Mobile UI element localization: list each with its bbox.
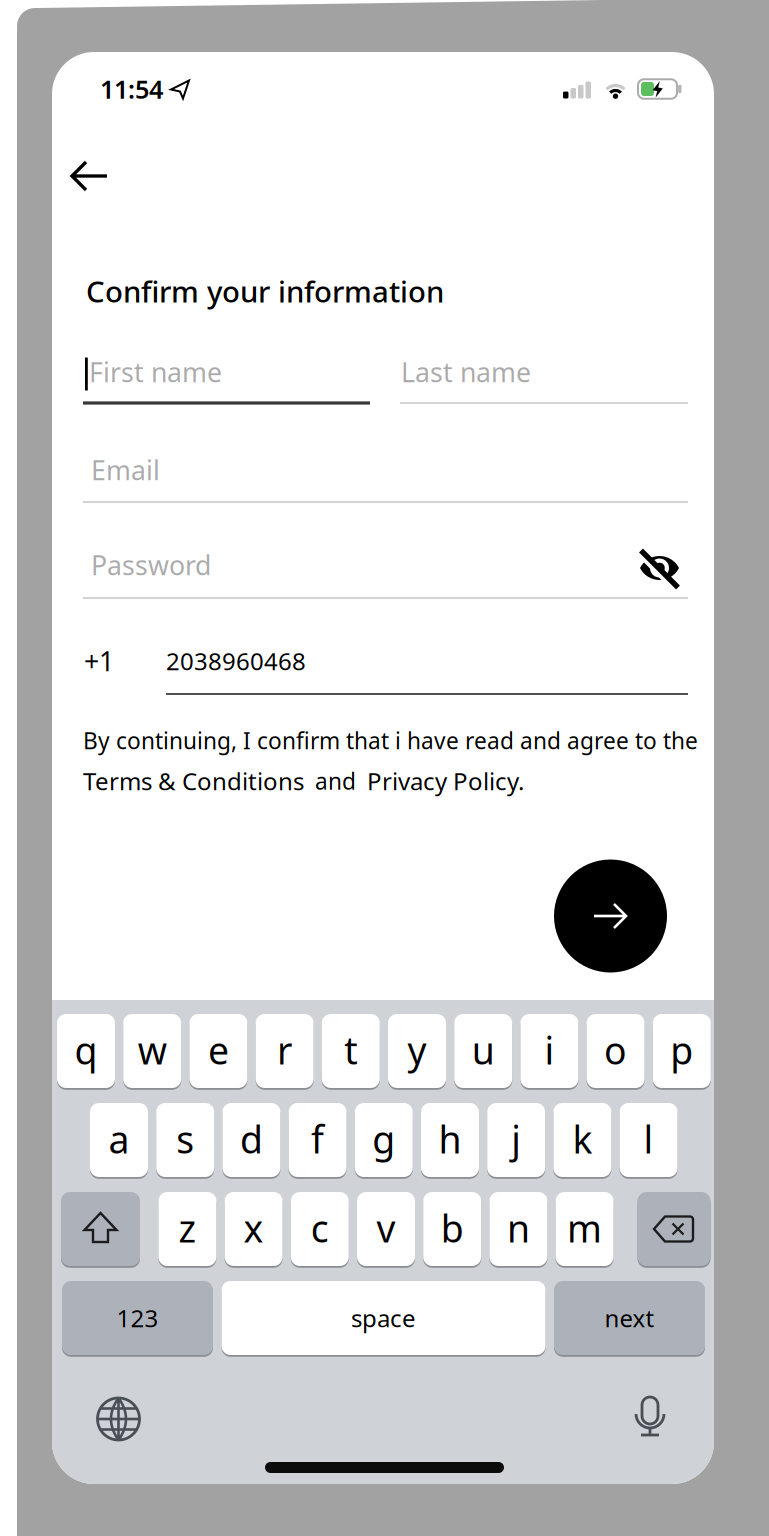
button[interactable]: y [388, 1014, 446, 1088]
button[interactable]: z [158, 1192, 216, 1266]
button[interactable]: Next keyboard [95, 1396, 141, 1442]
button[interactable]: f [289, 1103, 347, 1177]
staticText: t [344, 1025, 357, 1075]
button[interactable]: next [554, 1281, 705, 1355]
staticText: g [372, 1114, 395, 1164]
button[interactable]: +1 [83, 626, 688, 696]
staticText: +1 [84, 643, 114, 679]
button[interactable]: w [123, 1014, 181, 1088]
staticText: o [604, 1025, 627, 1075]
button[interactable]: c [291, 1192, 349, 1266]
staticText: l [644, 1114, 654, 1164]
button[interactable]: Back [69, 159, 109, 193]
staticText: x [244, 1203, 264, 1253]
staticText: Terms & Conditions [83, 765, 304, 797]
staticText: First name [89, 354, 222, 390]
staticText: and [315, 766, 356, 796]
button[interactable]: Dictate [635, 1396, 665, 1440]
button[interactable]: i [520, 1014, 578, 1088]
button[interactable]: Next [554, 859, 667, 972]
staticText: Email [91, 452, 160, 488]
button[interactable]: Privacy Policy. [367, 765, 524, 797]
button[interactable]: r [256, 1014, 314, 1088]
button[interactable]: s [156, 1103, 214, 1177]
button[interactable]: j [487, 1103, 545, 1177]
staticText: j [511, 1114, 521, 1164]
staticText: v [376, 1203, 395, 1253]
button[interactable]: d [222, 1103, 280, 1177]
staticText: c [311, 1203, 329, 1253]
button[interactable]: p [653, 1014, 711, 1088]
button[interactable]: Email [83, 436, 688, 506]
button[interactable]: l [620, 1103, 678, 1177]
button[interactable]: u [454, 1014, 512, 1088]
button[interactable]: Last name [400, 337, 688, 407]
button[interactable]: o [587, 1014, 645, 1088]
staticText: Password [91, 547, 211, 583]
button[interactable]: Password [83, 531, 688, 601]
button[interactable]: 123 [62, 1281, 213, 1355]
button[interactable]: x [225, 1192, 283, 1266]
button[interactable]: a [90, 1103, 148, 1177]
button[interactable]: First name [83, 337, 370, 407]
staticText: d [240, 1114, 263, 1164]
staticText: z [178, 1203, 196, 1253]
button[interactable]: h [421, 1103, 479, 1177]
button[interactable]: space [221, 1281, 545, 1355]
staticText: r [277, 1025, 292, 1075]
button[interactable]: v [357, 1192, 415, 1266]
staticText: space [351, 1302, 416, 1334]
button[interactable]: Show password [631, 540, 687, 596]
staticText: b [441, 1203, 464, 1253]
button[interactable]: b [423, 1192, 481, 1266]
staticText: k [572, 1114, 592, 1164]
staticText: Privacy Policy. [367, 765, 524, 797]
button[interactable]: Delete [637, 1192, 710, 1266]
staticText: Confirm your information [86, 271, 444, 310]
staticText: f [311, 1114, 324, 1164]
staticText: i [544, 1025, 554, 1075]
staticText: Last name [401, 354, 531, 390]
staticText: 11:54 [100, 72, 163, 106]
button[interactable]: e [189, 1014, 247, 1088]
staticText: e [208, 1025, 229, 1075]
staticText: a [108, 1114, 129, 1164]
button[interactable]: g [355, 1103, 413, 1177]
button[interactable]: Terms & Conditions [83, 765, 304, 797]
staticText: q [74, 1025, 97, 1075]
staticText: s [176, 1114, 194, 1164]
button[interactable]: t [322, 1014, 380, 1088]
button[interactable]: k [553, 1103, 611, 1177]
staticText: 2038960468 [166, 645, 306, 677]
staticText: By continuing, I confirm that i have rea… [83, 725, 698, 755]
staticText: next [604, 1302, 654, 1334]
button[interactable]: Shift [61, 1192, 140, 1266]
staticText: y [407, 1025, 426, 1075]
staticText: w [138, 1025, 167, 1075]
staticText: m [567, 1203, 602, 1253]
button[interactable]: m [556, 1192, 614, 1266]
staticText: u [472, 1025, 495, 1075]
button[interactable]: n [489, 1192, 547, 1266]
button[interactable]: q [57, 1014, 115, 1088]
staticText: p [670, 1025, 693, 1075]
staticText: n [507, 1203, 530, 1253]
staticText: h [438, 1114, 461, 1164]
staticText: 123 [116, 1302, 158, 1334]
